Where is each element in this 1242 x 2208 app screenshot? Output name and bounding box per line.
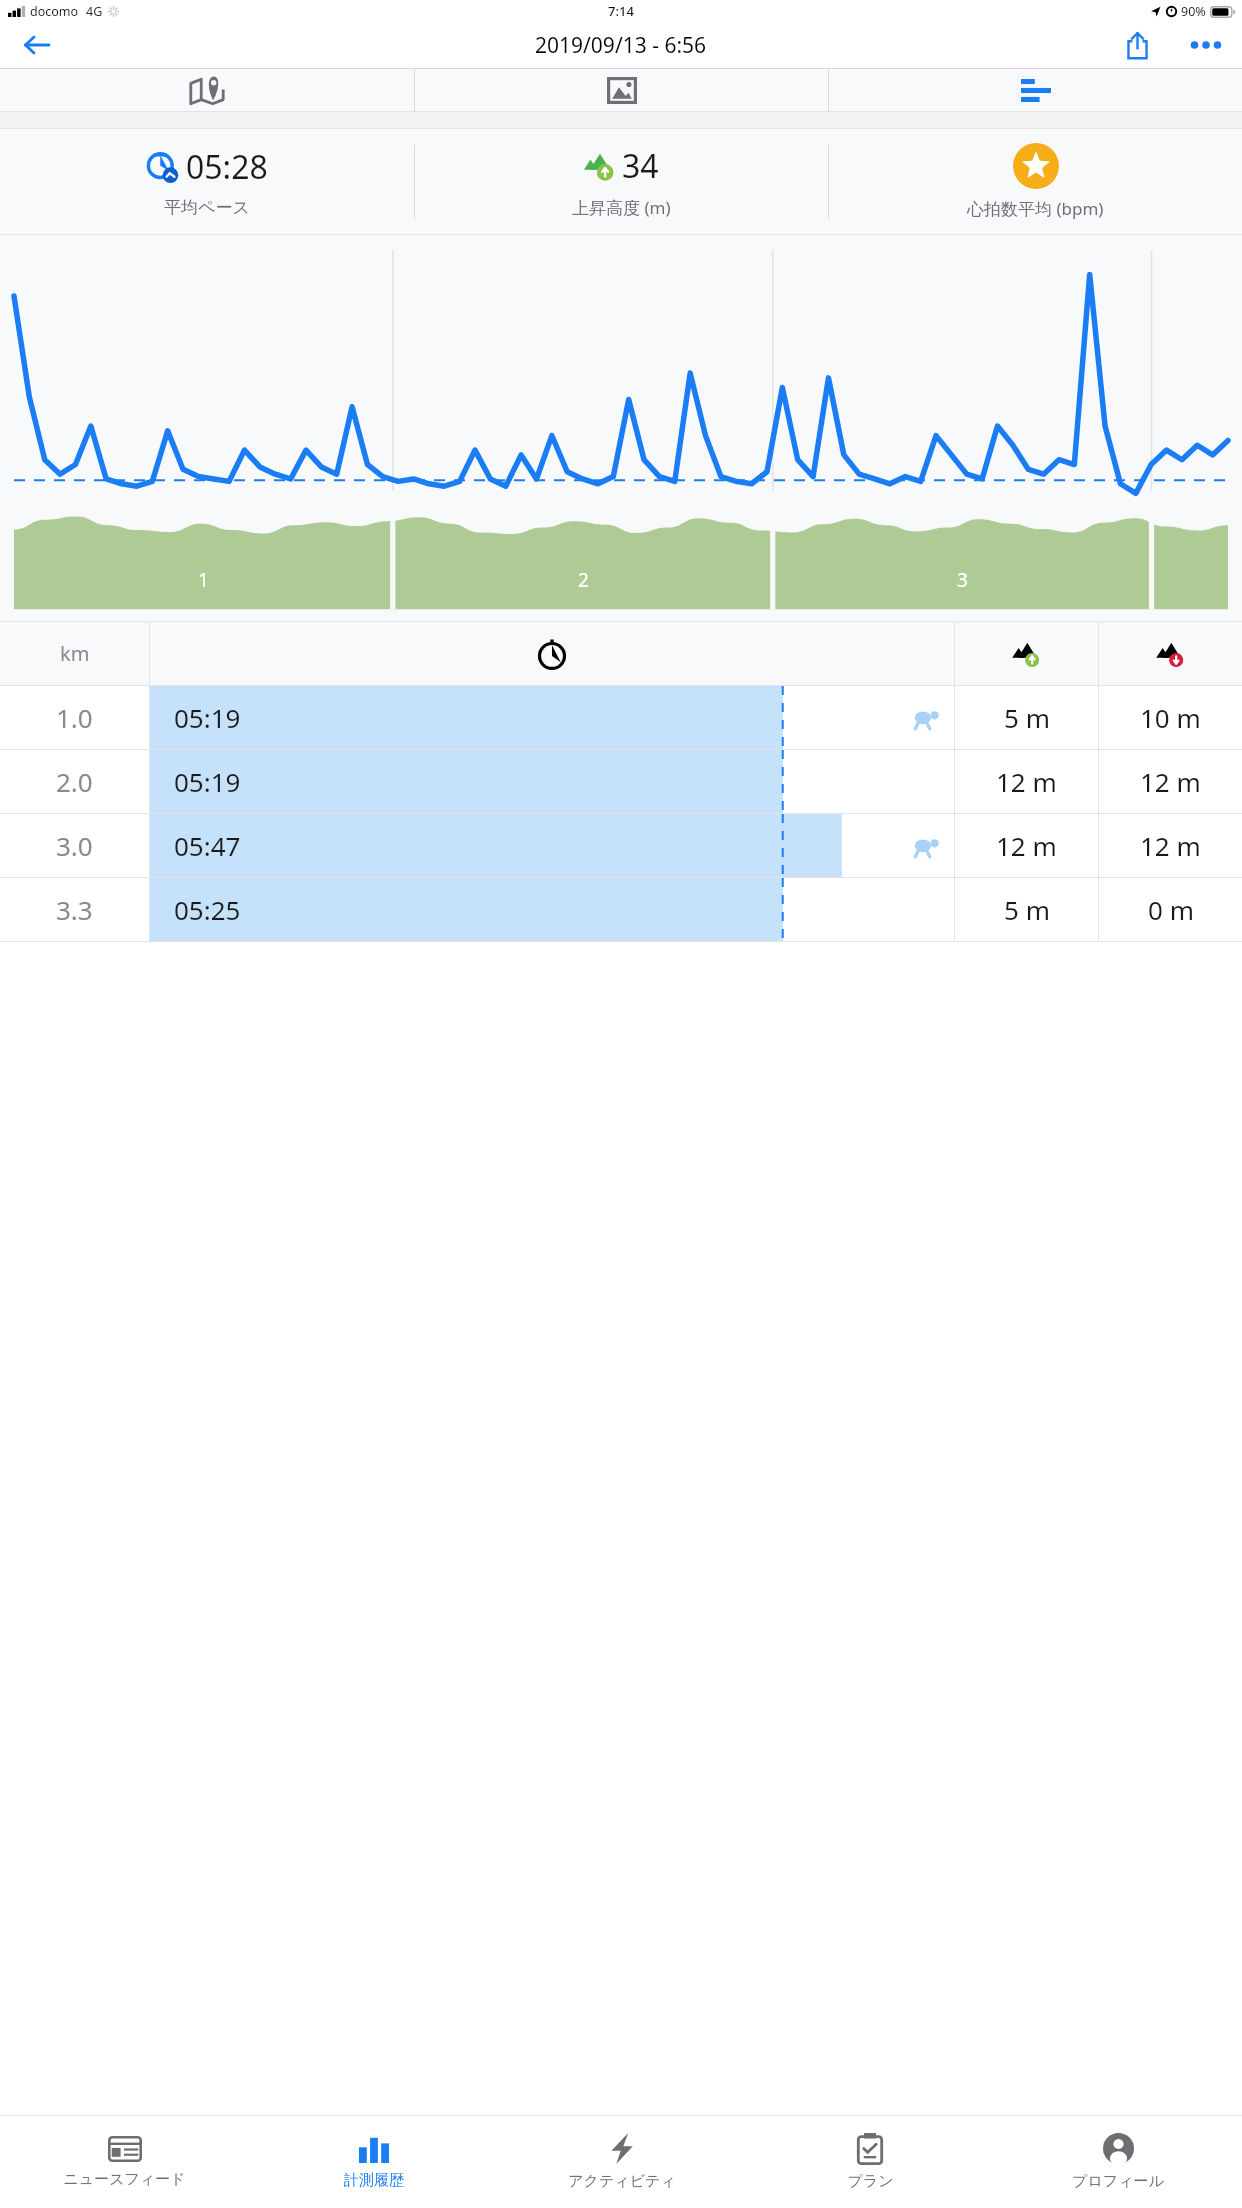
staticText: 3.3 <box>56 892 93 927</box>
button[interactable]: More options <box>1170 22 1242 68</box>
staticText: 10 m <box>1140 700 1201 735</box>
staticText: 12 m <box>1140 828 1201 863</box>
staticText: 1.0 <box>56 700 93 735</box>
staticText: 05:19 <box>174 700 241 735</box>
button[interactable]: ニュースフィード <box>0 2116 249 2208</box>
staticText: 05:47 <box>174 828 241 863</box>
staticText: 2.0 <box>56 764 93 799</box>
staticText: 5 m <box>1004 700 1050 735</box>
staticText: プロフィール <box>1072 2172 1164 2191</box>
button[interactable]: Share <box>1104 22 1170 68</box>
staticText: 34 <box>622 144 659 188</box>
staticText: 3.0 <box>56 828 93 863</box>
staticText: 7:14 <box>608 2 634 20</box>
staticText: 05:19 <box>174 764 241 799</box>
staticText: ニュースフィード <box>63 2170 186 2189</box>
button[interactable]: アクティビティ <box>498 2116 746 2208</box>
staticText: 90% <box>1181 3 1206 20</box>
button[interactable]: 3.3 <box>0 878 1242 941</box>
button[interactable]: Map <box>0 69 414 111</box>
staticText: 心拍数平均 (bpm) <box>967 197 1104 220</box>
staticText: 12 m <box>1140 764 1201 799</box>
staticText: 4G <box>86 3 103 20</box>
staticText: 計測履歴 <box>344 2171 404 2190</box>
staticText: docomo <box>30 3 79 20</box>
button[interactable]: プロフィール <box>994 2116 1242 2208</box>
staticText: プラン <box>847 2172 894 2191</box>
button[interactable]: Photos <box>415 69 828 111</box>
staticText: 2019/09/13 - 6:56 <box>535 31 707 60</box>
button[interactable]: Back <box>0 22 72 68</box>
button[interactable]: 34 <box>415 129 828 234</box>
button[interactable]: Charts <box>829 69 1242 111</box>
button[interactable]: 心拍数平均 (bpm) <box>829 129 1242 234</box>
button[interactable]: 1.0 <box>0 686 1242 749</box>
staticText: 5 m <box>1004 892 1050 927</box>
button[interactable]: 計測履歴 <box>249 2116 498 2208</box>
button[interactable]: 05:28 <box>0 129 414 234</box>
button[interactable]: 3.0 <box>0 814 1242 877</box>
staticText: 3 <box>957 567 968 593</box>
staticText: 上昇高度 (m) <box>572 196 671 219</box>
staticText: アクティビティ <box>568 2172 676 2191</box>
staticText: 05:28 <box>186 145 268 189</box>
staticText: 12 m <box>996 828 1057 863</box>
staticText: 1 <box>198 567 209 593</box>
button[interactable]: プラン <box>746 2116 994 2208</box>
staticText: 0 m <box>1148 892 1194 927</box>
staticText: 12 m <box>996 764 1057 799</box>
button[interactable]: 2.0 <box>0 750 1242 813</box>
staticText: 05:25 <box>174 892 241 927</box>
staticText: 平均ペース <box>164 197 250 218</box>
staticText: km <box>60 640 90 667</box>
staticText: 2 <box>578 567 589 593</box>
